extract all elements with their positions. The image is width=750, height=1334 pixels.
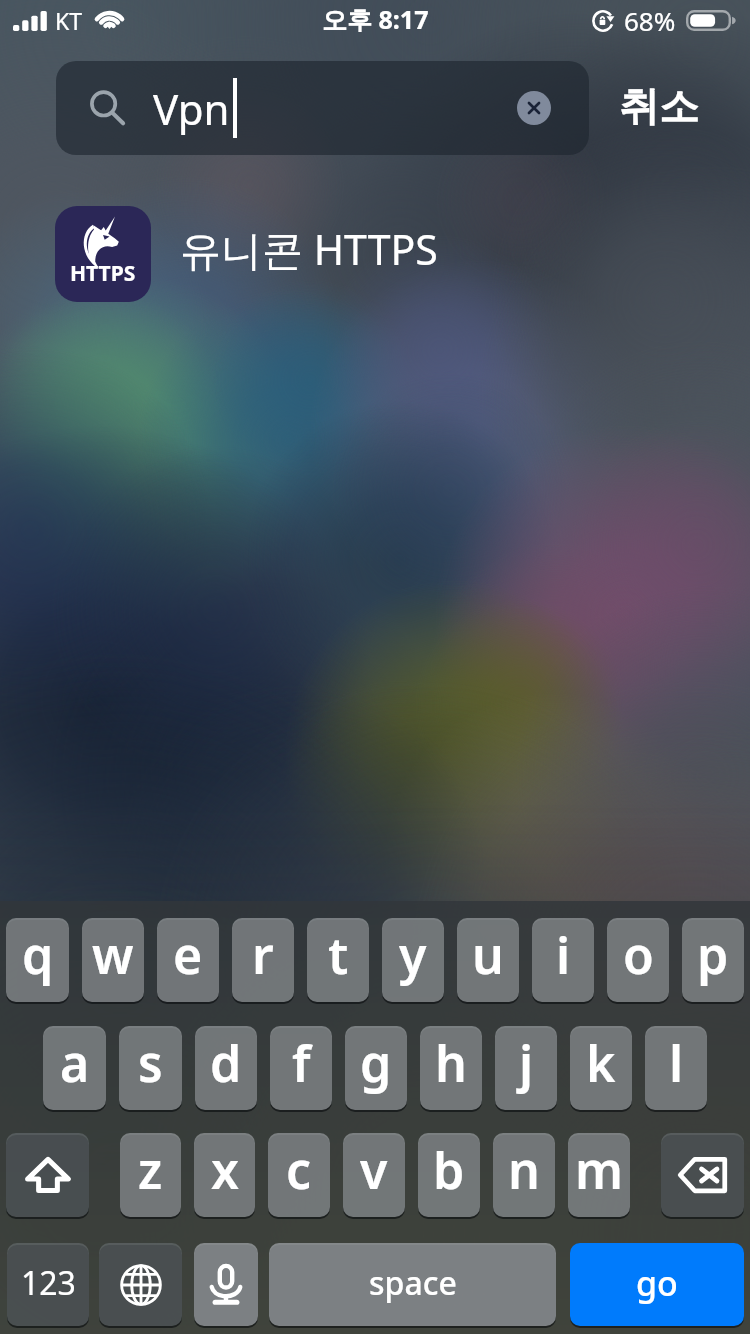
button[interactable]: 123 bbox=[7, 1243, 89, 1326]
staticText: space bbox=[369, 1261, 457, 1305]
staticText: w bbox=[92, 921, 134, 989]
staticText: e bbox=[173, 921, 203, 989]
button[interactable]: u bbox=[457, 918, 519, 1002]
button[interactable]: Backspace bbox=[661, 1133, 744, 1217]
button[interactable]: x bbox=[194, 1133, 255, 1217]
staticText: d bbox=[210, 1029, 242, 1097]
button[interactable]: b bbox=[418, 1133, 480, 1217]
button[interactable]: y bbox=[382, 918, 444, 1002]
staticText: a bbox=[60, 1029, 90, 1097]
staticText: o bbox=[623, 921, 654, 989]
button[interactable]: v bbox=[343, 1133, 405, 1217]
button[interactable]: e bbox=[157, 918, 219, 1002]
staticText: KT bbox=[55, 5, 83, 36]
staticText: g bbox=[360, 1029, 392, 1097]
staticText: i bbox=[556, 921, 571, 989]
button[interactable]: f bbox=[270, 1026, 332, 1110]
staticText: q bbox=[22, 921, 54, 989]
button[interactable]: n bbox=[493, 1133, 555, 1217]
staticText: y bbox=[399, 921, 427, 989]
button[interactable]: t bbox=[307, 918, 369, 1002]
staticText: p bbox=[697, 921, 729, 989]
staticText: v bbox=[360, 1136, 388, 1204]
button[interactable]: i bbox=[532, 918, 594, 1002]
button[interactable]: l bbox=[645, 1026, 707, 1110]
button[interactable]: Dictate bbox=[194, 1243, 258, 1326]
staticText: r bbox=[252, 921, 274, 989]
staticText: k bbox=[586, 1029, 616, 1097]
staticText: 오후 8:17 bbox=[322, 2, 429, 36]
button[interactable]: c bbox=[268, 1133, 330, 1217]
staticText: n bbox=[508, 1136, 540, 1204]
button[interactable]: space bbox=[269, 1243, 556, 1326]
button[interactable]: o bbox=[607, 918, 669, 1002]
button[interactable]: Vpn bbox=[56, 61, 589, 155]
staticText: h bbox=[435, 1029, 467, 1097]
button[interactable]: z bbox=[120, 1133, 181, 1217]
button[interactable]: r bbox=[232, 918, 294, 1002]
staticText: j bbox=[519, 1029, 534, 1097]
staticText: 취소 bbox=[619, 81, 699, 131]
staticText: l bbox=[669, 1029, 684, 1097]
staticText: z bbox=[138, 1136, 163, 1204]
staticText: s bbox=[138, 1029, 163, 1097]
button[interactable]: j bbox=[495, 1026, 557, 1110]
button[interactable]: d bbox=[195, 1026, 257, 1110]
staticText: Vpn bbox=[153, 80, 230, 137]
button[interactable]: Next keyboard bbox=[99, 1243, 182, 1326]
staticText: 123 bbox=[21, 1261, 76, 1305]
button[interactable]: w bbox=[82, 918, 144, 1002]
staticText: HTTPS bbox=[70, 259, 136, 288]
staticText: t bbox=[328, 921, 349, 989]
button[interactable]: s bbox=[119, 1026, 182, 1110]
button[interactable]: q bbox=[6, 918, 69, 1002]
button[interactable]: HTTPS bbox=[0, 192, 750, 316]
staticText: c bbox=[286, 1136, 312, 1204]
button[interactable]: m bbox=[568, 1133, 630, 1217]
button[interactable]: k bbox=[570, 1026, 632, 1110]
staticText: x bbox=[211, 1136, 239, 1204]
button[interactable]: Clear text bbox=[517, 91, 551, 125]
button[interactable]: h bbox=[420, 1026, 482, 1110]
staticText: m bbox=[575, 1136, 623, 1204]
button[interactable]: a bbox=[43, 1026, 106, 1110]
button[interactable]: g bbox=[345, 1026, 407, 1110]
button[interactable]: Shift bbox=[6, 1133, 89, 1217]
button[interactable]: 취소 bbox=[599, 61, 719, 151]
staticText: go bbox=[636, 1260, 678, 1306]
button[interactable]: go bbox=[570, 1243, 744, 1326]
staticText: f bbox=[292, 1029, 311, 1097]
staticText: b bbox=[433, 1136, 465, 1204]
staticText: 68% bbox=[624, 3, 676, 38]
staticText: u bbox=[472, 921, 504, 989]
staticText: 유니콘 HTTPS bbox=[180, 221, 438, 277]
button[interactable]: p bbox=[682, 918, 744, 1002]
